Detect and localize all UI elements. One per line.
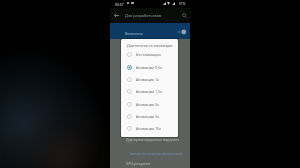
button[interactable]: Search [180,11,189,20]
button[interactable]: Без анимации [121,48,178,60]
staticText: 57% [179,2,186,6]
staticText: Длительность анимации [127,43,173,48]
button[interactable]: Анимация 0,5x [121,61,178,73]
staticText: GPU-ускорение [126,161,151,165]
button[interactable]: Анимация 1,5x [121,85,178,97]
staticText: Анимация 1x [136,77,159,82]
staticText: Аппаратное ускорение визуализации [130,152,183,156]
staticText: 00:57 [115,2,124,7]
staticText: Для разработчиков [125,13,162,18]
button[interactable]: Анимация 10x [121,122,178,134]
button[interactable]: Анимация 1x [121,73,178,85]
staticText: Анимация 5x [136,114,159,119]
staticText: Анимация 1,5x [136,89,162,94]
button[interactable]: Back [112,11,121,20]
button[interactable]: Анимация 5x [121,110,178,122]
staticText: Повторная задержка к выдержке [126,137,180,141]
button[interactable]: Анимация 2x [121,98,178,110]
button[interactable]: Включено [110,23,190,39]
staticText: Анимация 2x [136,102,159,107]
staticText: Без анимации [136,52,161,57]
staticText: Анимация 0,5x [136,65,162,70]
staticText: Выкл. [126,140,134,144]
staticText: Анимация 10x [136,126,161,131]
staticText: Включено [125,31,143,36]
